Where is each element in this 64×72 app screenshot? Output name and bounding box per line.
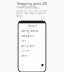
staticText: Designing great iOS experiences (17, 2, 47, 9)
button[interactable]: Getting started (18, 29, 46, 34)
button[interactable]: Typography (18, 43, 46, 48)
staticText: Typography (20, 44, 34, 47)
staticText: Navigation (20, 34, 33, 38)
staticText: Library (26, 24, 37, 28)
button[interactable]: Navigation (18, 34, 46, 39)
button[interactable]: Lists (18, 39, 46, 43)
staticText: Layout (20, 54, 27, 57)
staticText: Colour (20, 49, 29, 52)
button[interactable]: Layout (18, 53, 46, 58)
button[interactable]: Compose (41, 64, 43, 66)
staticText: Lists (20, 39, 25, 42)
staticText: A short walkthrough of navigation, lists… (16, 7, 48, 18)
button[interactable]: Colour (18, 48, 46, 53)
staticText: Getting started (20, 30, 38, 33)
